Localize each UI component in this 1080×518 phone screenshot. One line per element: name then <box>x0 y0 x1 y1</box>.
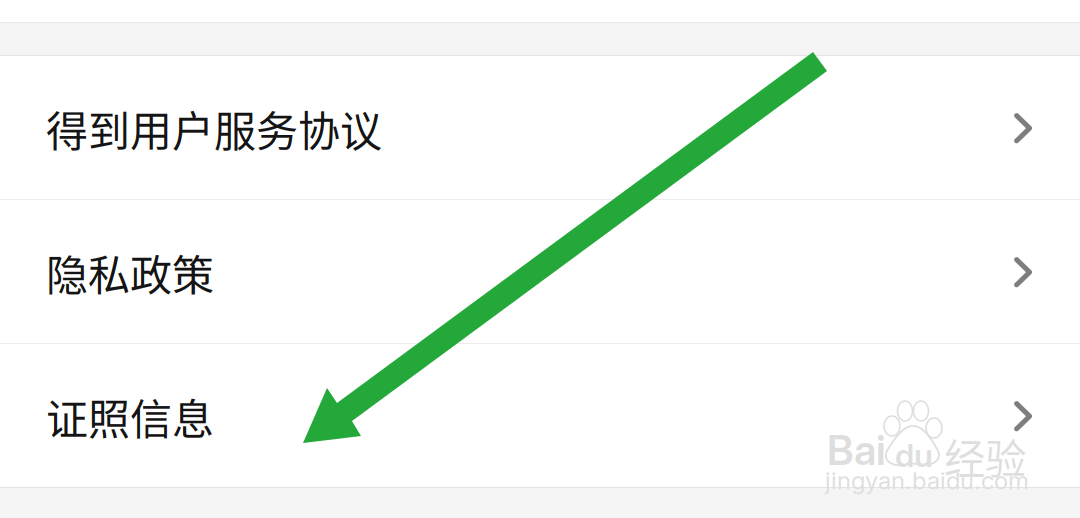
staticText: 证照信息 <box>46 386 214 447</box>
button[interactable]: 得到用户服务协议 <box>0 56 1080 199</box>
staticText: 隐私政策 <box>46 242 214 303</box>
button[interactable]: 隐私政策 <box>0 200 1080 343</box>
staticText: du <box>895 436 933 475</box>
staticText: 经验 <box>944 426 1026 486</box>
staticText: Bai <box>827 425 886 475</box>
button[interactable]: 证照信息 <box>0 344 1080 487</box>
staticText: jingyan.baidu.com <box>825 466 1029 495</box>
staticText: 得到用户服务协议 <box>46 98 382 159</box>
